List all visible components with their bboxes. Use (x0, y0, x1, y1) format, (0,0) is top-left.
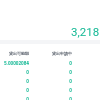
staticText: 貸出可能額 (9, 51, 29, 56)
staticText: 0 (69, 70, 72, 75)
staticText: 0 (69, 61, 72, 66)
staticText: 0 (26, 79, 29, 84)
staticText: 0 (26, 88, 29, 93)
staticText: 0 (69, 88, 72, 93)
staticText: 0 (26, 70, 29, 75)
staticText: 0 (69, 79, 72, 84)
staticText: 0 (69, 97, 72, 100)
staticText: 貸出申請中 (52, 51, 72, 56)
staticText: 3,218 (71, 25, 100, 38)
staticText: 5.00002084 (3, 61, 29, 66)
staticText: 0 (26, 97, 29, 100)
